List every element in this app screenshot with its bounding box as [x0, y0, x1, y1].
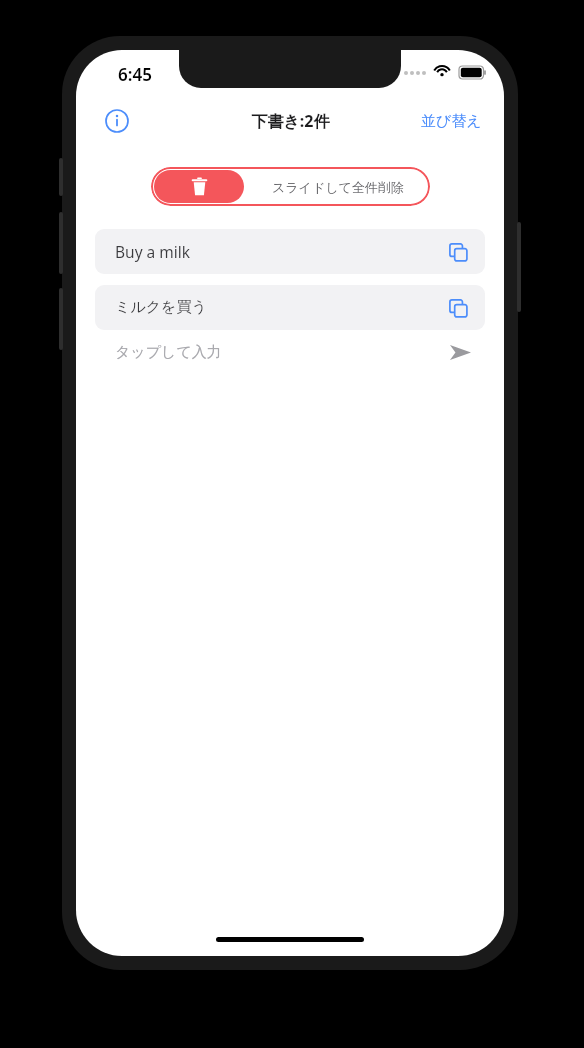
button[interactable]: 並び替え	[417, 106, 486, 137]
button[interactable]: ミルクを買う	[95, 285, 485, 330]
staticText: Buy a milk	[115, 241, 191, 262]
staticText: ミルクを買う	[115, 298, 207, 317]
staticText: 並び替え	[421, 112, 482, 131]
button[interactable]: Copy	[442, 236, 474, 268]
staticText: 下書き:2件	[251, 110, 330, 132]
staticText: 6:45	[118, 63, 152, 86]
button[interactable]: Send	[443, 335, 477, 369]
staticText: タップして入力	[115, 343, 222, 362]
staticText: スライドして全件削除	[272, 179, 404, 195]
button[interactable]: Copy	[442, 292, 474, 324]
button[interactable]: Info	[100, 104, 134, 138]
button[interactable]: タップして入力	[95, 330, 485, 374]
button[interactable]: スライドして全件削除	[151, 167, 430, 206]
other: Delete all	[154, 170, 244, 203]
button[interactable]: Buy a milk	[95, 229, 485, 274]
